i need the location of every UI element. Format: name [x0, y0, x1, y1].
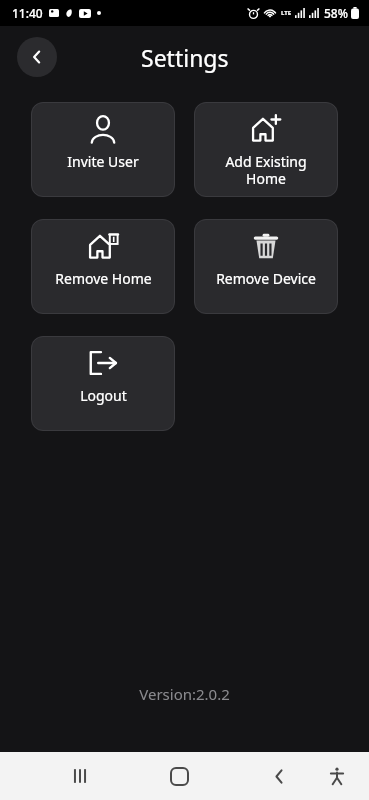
button[interactable]: Recent apps	[56, 752, 104, 800]
staticText: 11:40	[12, 5, 43, 21]
staticText: 58%	[324, 5, 348, 21]
button[interactable]: Home	[155, 752, 203, 800]
staticText: Remove Device	[216, 269, 316, 288]
staticText: LTE	[281, 9, 292, 17]
button[interactable]: Accessibility	[313, 752, 361, 800]
button[interactable]: Remove Home	[31, 219, 175, 314]
button[interactable]: Back	[255, 752, 303, 800]
button[interactable]: Logout	[31, 336, 175, 431]
staticText: Invite User	[67, 152, 139, 171]
button[interactable]: Remove Device	[194, 219, 338, 314]
button[interactable]: Add Existing Home	[194, 102, 338, 197]
button[interactable]: Back	[17, 37, 57, 77]
staticText: Version:2.0.2	[0, 684, 369, 704]
staticText: Remove Home	[55, 269, 152, 288]
staticText: Add Existing Home	[225, 152, 307, 187]
button[interactable]: Invite User	[31, 102, 175, 197]
staticText: Settings	[141, 42, 229, 73]
staticText: Logout	[80, 386, 127, 405]
